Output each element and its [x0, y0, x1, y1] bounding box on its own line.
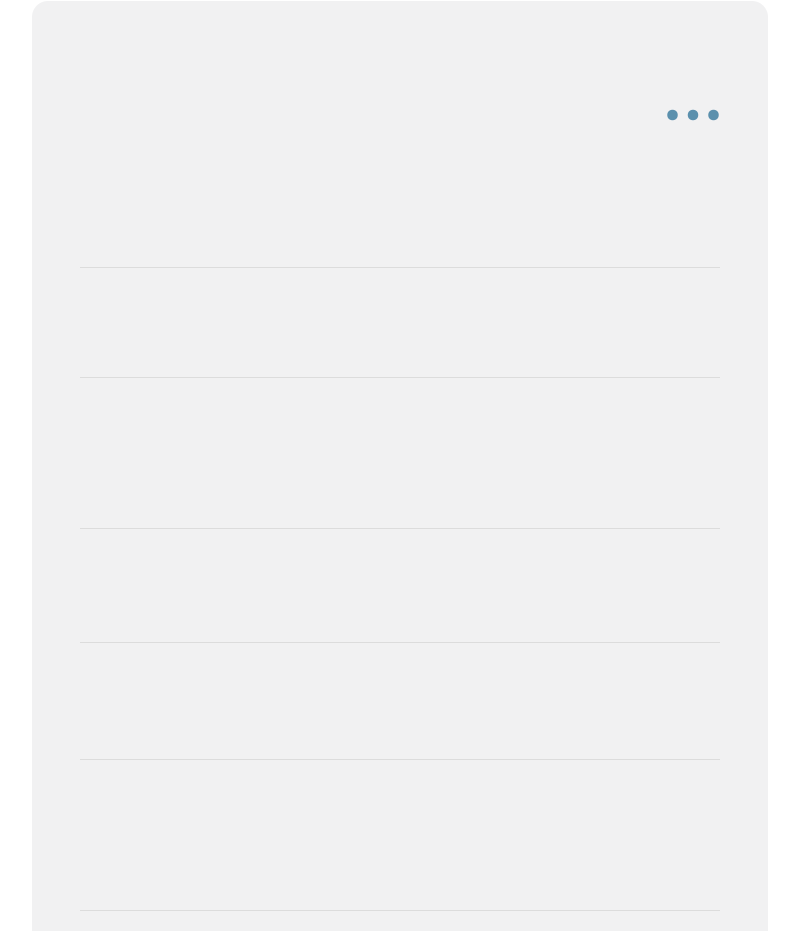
- button[interactable]: Item: [32, 1, 768, 267]
- button[interactable]: More: [656, 93, 730, 137]
